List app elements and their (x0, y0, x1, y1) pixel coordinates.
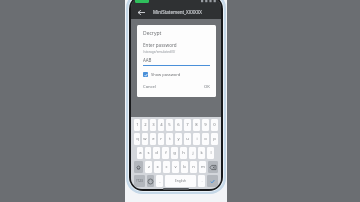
staticText: Decrypt (143, 30, 162, 37)
button[interactable]: OK (204, 84, 210, 90)
button[interactable]: 0 (211, 119, 218, 131)
button[interactable]: 3 (150, 119, 156, 131)
staticText: i (196, 136, 198, 142)
staticText: MiniStatement_XXXXXX (153, 9, 202, 15)
button[interactable]: l (207, 147, 214, 159)
button[interactable]: Backspace (208, 161, 218, 173)
staticText: Show password (151, 72, 181, 77)
staticText: 6 (177, 122, 180, 128)
button[interactable]: 7 (184, 119, 191, 131)
button[interactable]: 5 (166, 119, 173, 131)
button[interactable]: Enter (207, 175, 218, 187)
button[interactable]: 2 (142, 119, 148, 131)
staticText: /storage/emulated/0/Mi..._25Jun2023_14_2… (143, 50, 210, 54)
staticText: r (160, 136, 162, 142)
button[interactable]: a (137, 147, 143, 159)
button[interactable]: Cancel (143, 84, 157, 90)
button[interactable]: h (180, 147, 187, 159)
button[interactable]: x (154, 161, 161, 173)
staticText: 3 (152, 122, 155, 128)
staticText: o (204, 136, 207, 142)
staticText: u (186, 136, 189, 142)
button[interactable]: w (142, 133, 148, 145)
button[interactable]: t (166, 133, 173, 145)
button[interactable]: k (198, 147, 205, 159)
staticText: ?123 (136, 179, 143, 183)
button[interactable]: n (190, 161, 197, 173)
button[interactable]: m (199, 161, 206, 173)
button[interactable]: z (145, 161, 152, 173)
button[interactable]: s (145, 147, 151, 159)
button[interactable]: . (198, 175, 205, 187)
staticText: 0 (213, 122, 216, 128)
button[interactable]: 1 (134, 119, 140, 131)
button[interactable]: g (171, 147, 178, 159)
button[interactable]: f (162, 147, 169, 159)
staticText: c (165, 164, 168, 170)
staticText: English (175, 179, 186, 183)
staticText: y (177, 136, 180, 142)
staticText: h (182, 150, 185, 156)
staticText: n (192, 164, 195, 170)
button[interactable]: Show password (143, 72, 181, 77)
button[interactable]: q (134, 133, 140, 145)
staticText: OK (204, 84, 210, 90)
staticText: x (156, 164, 159, 170)
button[interactable]: ?123 (134, 175, 145, 187)
staticText: Enter password (143, 42, 177, 48)
staticText: 2 (144, 122, 147, 128)
staticText: l (210, 150, 212, 156)
button[interactable]: o (202, 133, 209, 145)
button[interactable]: d (153, 147, 160, 159)
staticText: 4 (160, 122, 163, 128)
staticText: 5 (168, 122, 171, 128)
staticText: w (143, 136, 147, 142)
staticText: j (192, 150, 194, 156)
button[interactable]: y (175, 133, 182, 145)
staticText: b (183, 164, 186, 170)
staticText: g (173, 150, 176, 156)
staticText: k (200, 150, 203, 156)
staticText: q (136, 136, 139, 142)
staticText: 9 (204, 122, 207, 128)
staticText: a (139, 150, 142, 156)
staticText: . (201, 178, 203, 184)
staticText: AAB (143, 57, 152, 63)
staticText: e (152, 136, 155, 142)
button[interactable]: j (189, 147, 196, 159)
staticText: z (148, 164, 150, 170)
staticText: 1 (136, 122, 139, 128)
button[interactable]: e (150, 133, 156, 145)
button[interactable]: English (165, 175, 196, 187)
staticText: 7 (186, 122, 189, 128)
button[interactable]: v (172, 161, 179, 173)
staticText: 8 (195, 122, 198, 128)
button[interactable]: p (211, 133, 218, 145)
button[interactable]: Back (135, 6, 147, 18)
staticText: s (147, 150, 150, 156)
staticText: t (169, 136, 171, 142)
button[interactable]: c (163, 161, 170, 173)
button[interactable]: , (156, 175, 163, 187)
button[interactable]: i (193, 133, 200, 145)
button[interactable]: r (158, 133, 164, 145)
staticText: m (201, 164, 205, 170)
button[interactable]: Emoji (147, 175, 154, 187)
button[interactable]: u (184, 133, 191, 145)
staticText: d (155, 150, 158, 156)
button[interactable]: Shift (134, 161, 143, 173)
staticText: p (213, 136, 216, 142)
staticText: , (159, 178, 161, 184)
staticText: f (165, 150, 167, 156)
button[interactable]: 4 (158, 119, 164, 131)
button[interactable]: 9 (202, 119, 209, 131)
button[interactable]: 6 (175, 119, 182, 131)
button[interactable]: 8 (193, 119, 200, 131)
staticText: Cancel (143, 84, 157, 90)
button[interactable]: b (181, 161, 188, 173)
staticText: v (174, 164, 177, 170)
